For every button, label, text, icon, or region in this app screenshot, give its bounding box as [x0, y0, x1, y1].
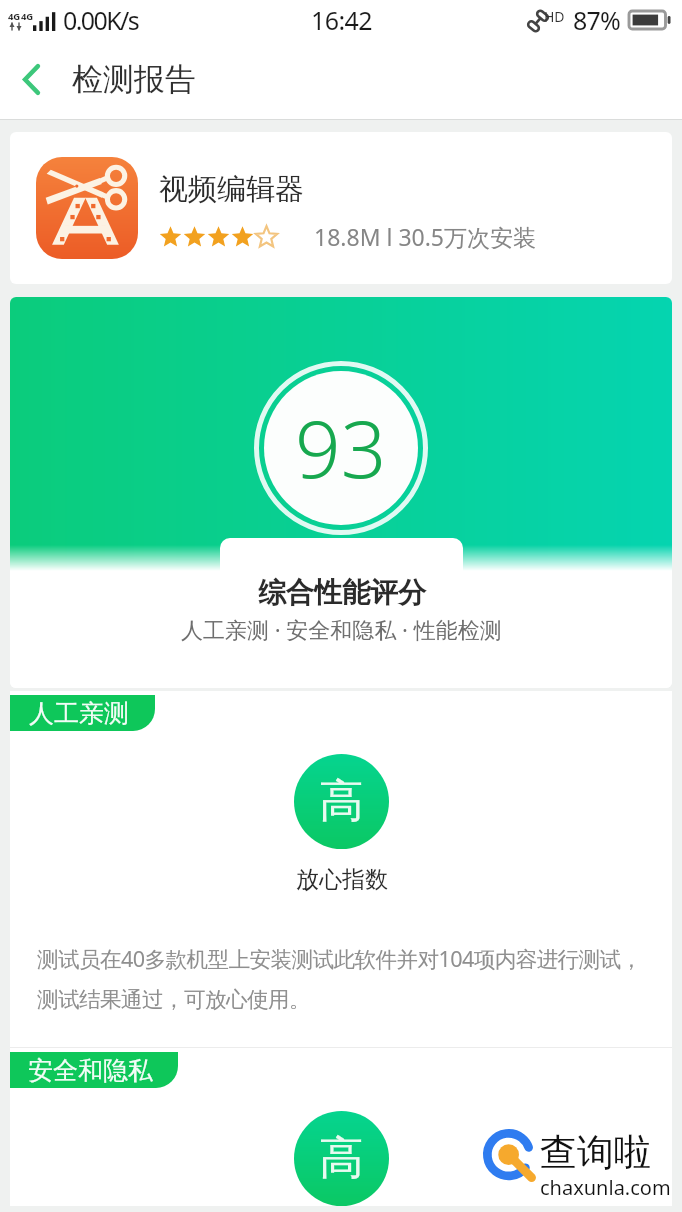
button[interactable]: Back [0, 40, 62, 119]
staticText: 16:42 [311, 3, 372, 37]
staticText: 4G [21, 10, 33, 23]
staticText: chaxunla.com [540, 1174, 671, 1201]
staticText: 查询啦 [540, 1129, 651, 1176]
staticText: 检测报告 [72, 60, 196, 99]
staticText: 4G [8, 10, 20, 23]
staticText: 测试员在40多款机型上安装测试此软件并对104项内容进行测试，测试结果通过，可放… [37, 944, 658, 1013]
staticText: 18.8M l 30.5万次安装 [314, 221, 537, 252]
button[interactable]: 人工亲测 [10, 695, 155, 731]
staticText: 高 [319, 1130, 364, 1187]
staticText: 放心指数 [296, 865, 388, 894]
staticText: 综合性能评分 [258, 575, 426, 610]
staticText: 人工亲测 [29, 698, 129, 729]
button[interactable]: 安全和隐私 [10, 1052, 178, 1088]
staticText: 安全和隐私 [28, 1055, 153, 1086]
staticText: HD [544, 7, 565, 26]
staticText: 视频编辑器 [159, 171, 304, 208]
staticText: 87% [573, 3, 620, 37]
staticText: 人工亲测 · 安全和隐私 · 性能检测 [181, 614, 502, 644]
staticText: 0.00K/s [63, 3, 139, 37]
button[interactable]: 视频编辑器 [10, 132, 672, 284]
staticText: 高 [319, 773, 364, 830]
staticText: 93 [295, 392, 387, 501]
